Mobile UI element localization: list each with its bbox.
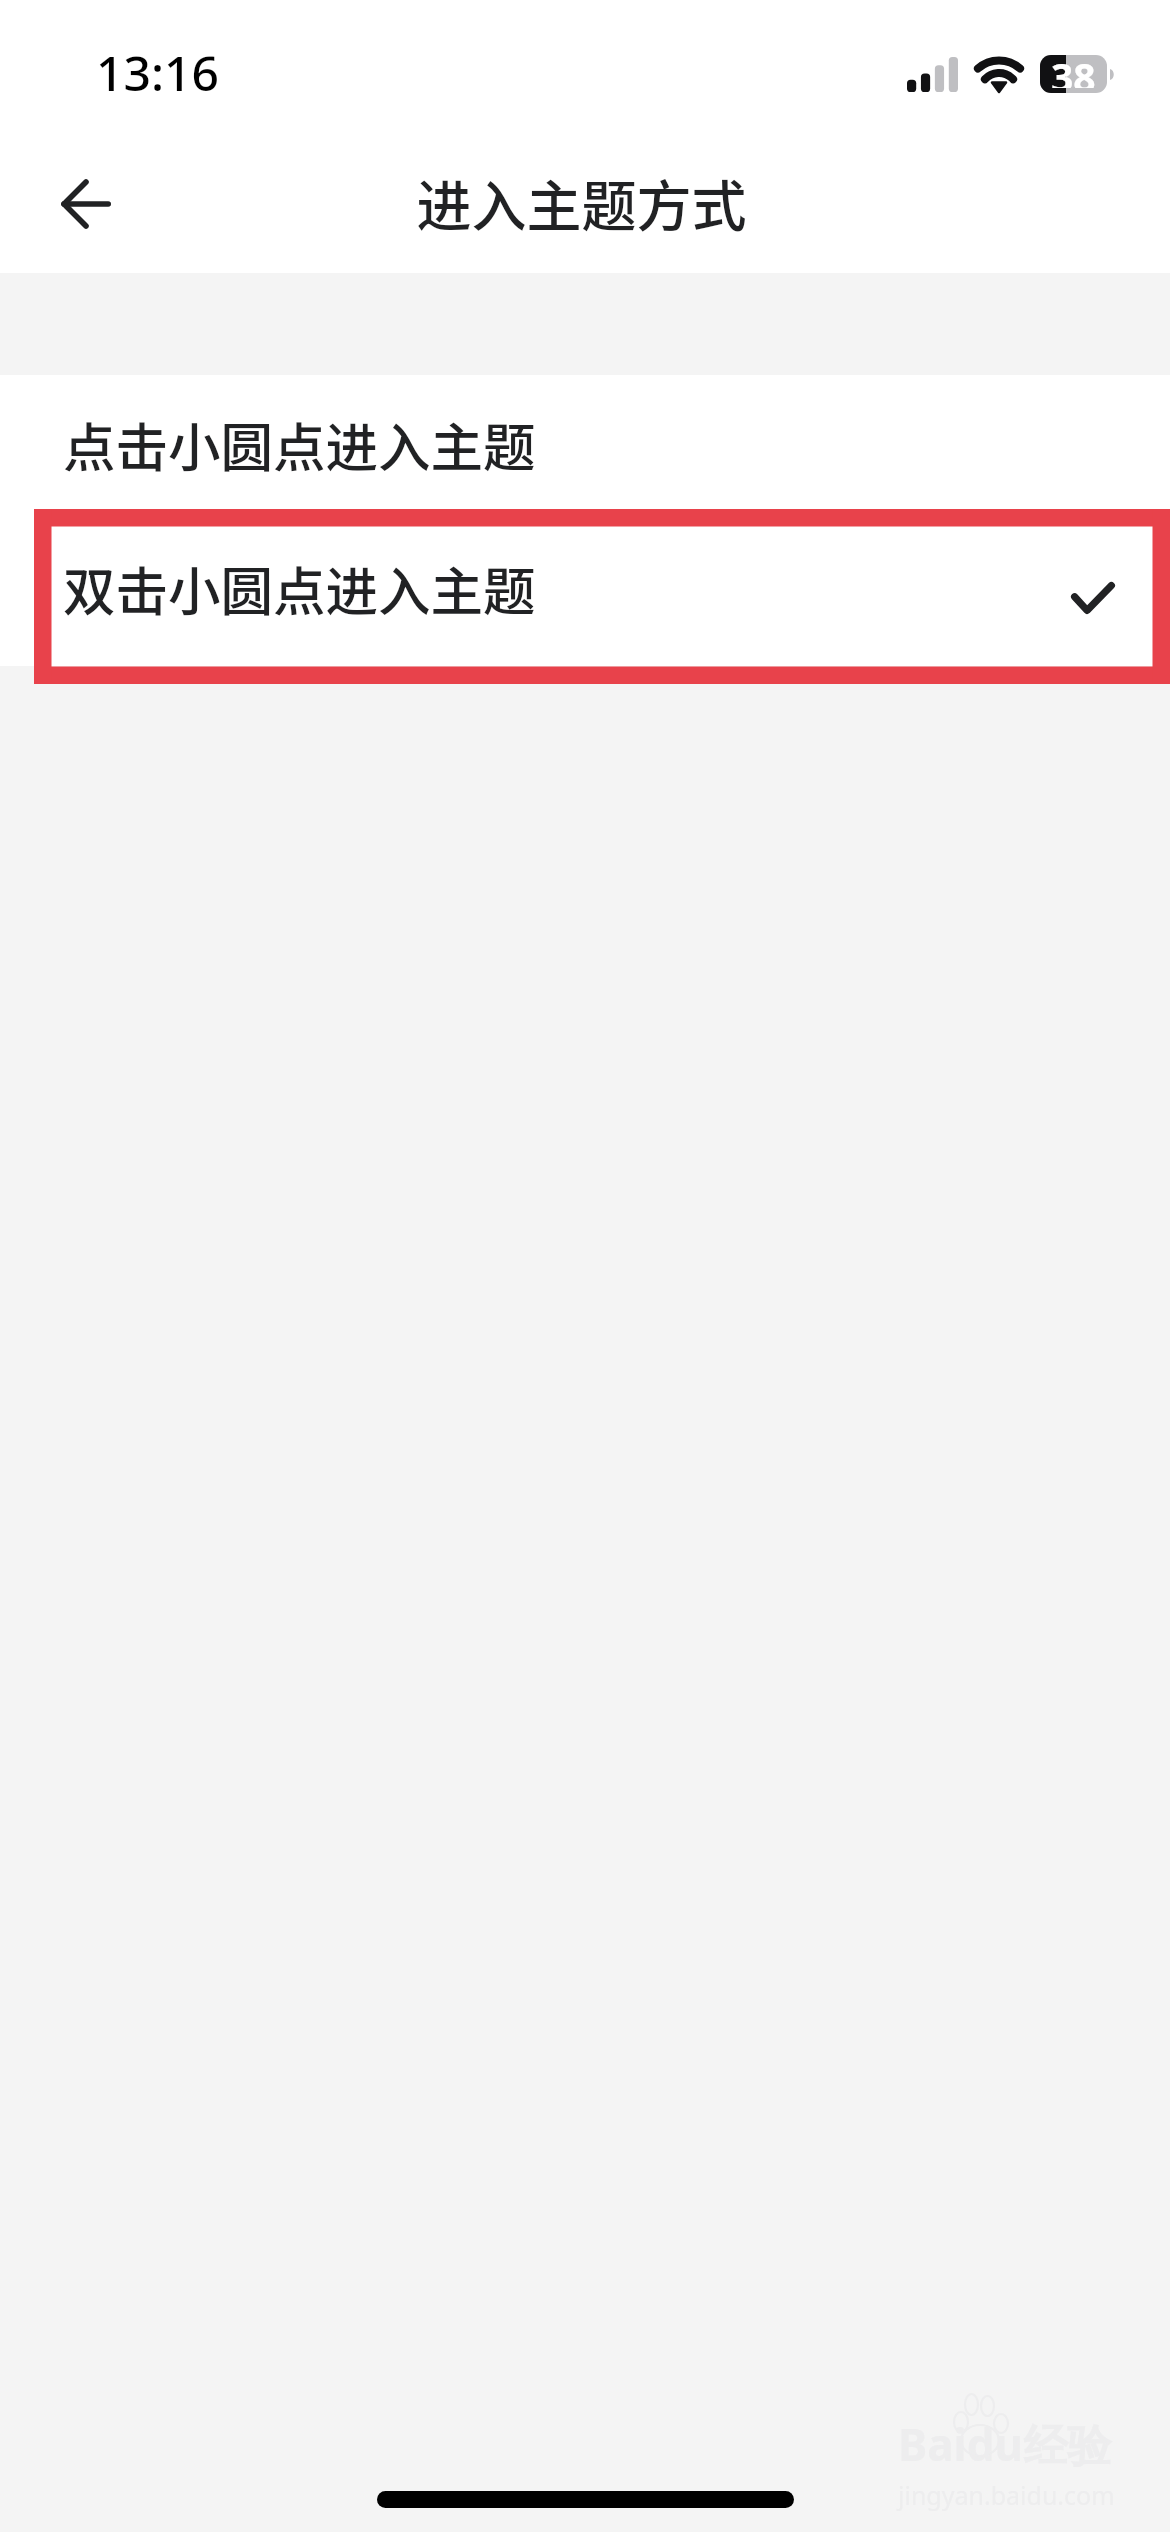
button[interactable]: 点击小圆点进入主题 [0,375,1170,521]
staticText: 进入主题方式 [416,162,747,242]
staticText: 点击小圆点进入主题 [63,406,536,482]
staticText: Baidu经验 [898,2414,1112,2474]
staticText: 双击小圆点进入主题 [63,550,536,626]
staticText: 13:16 [96,40,219,105]
button[interactable]: 双击小圆点进入主题 [0,521,1170,666]
button[interactable]: Back [28,146,144,262]
staticText: 38 [1051,50,1096,88]
